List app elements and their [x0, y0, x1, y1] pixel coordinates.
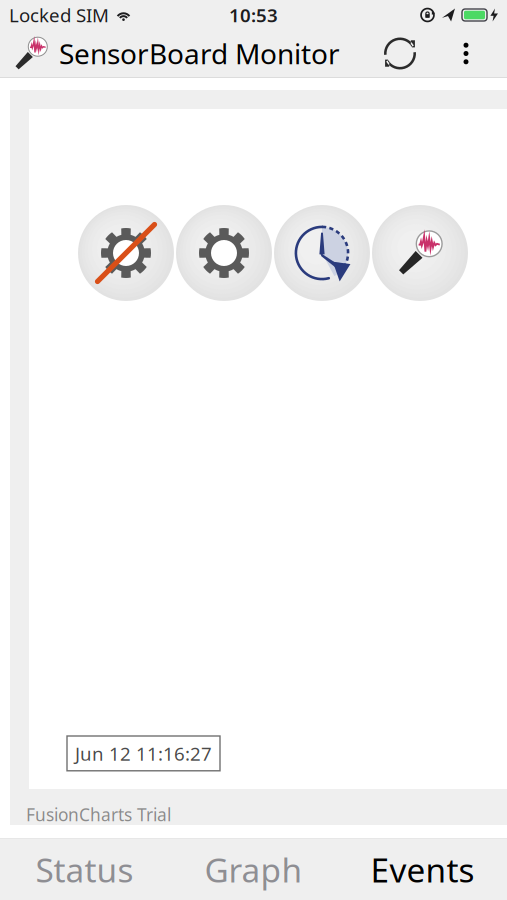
staticText: FusionCharts Trial [26, 803, 171, 826]
staticText: Events [370, 847, 474, 892]
button[interactable]: Event marker [274, 205, 370, 301]
button[interactable]: More options [440, 30, 492, 77]
staticText: Jun 12 11:16:27 [75, 741, 212, 766]
staticText: Status [35, 847, 133, 892]
staticText: SensorBoard Monitor [59, 35, 340, 72]
button[interactable]: Events [338, 839, 507, 900]
button[interactable]: Graph [169, 839, 338, 900]
staticText: 10:53 [229, 3, 278, 27]
button[interactable]: Event marker [372, 205, 468, 301]
staticText: Locked SIM [9, 3, 109, 27]
button[interactable]: Refresh [372, 30, 428, 77]
button[interactable]: Event marker [176, 205, 272, 301]
staticText: Graph [204, 847, 302, 892]
button[interactable]: Status [0, 839, 169, 900]
button[interactable]: Event marker [78, 205, 174, 301]
